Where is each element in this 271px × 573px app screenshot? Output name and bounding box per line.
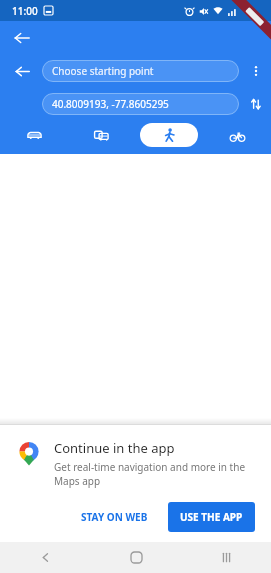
- staticText: STAY ON WEB: [81, 510, 148, 524]
- button[interactable]: Cycling: [215, 123, 259, 147]
- staticText: 40.8009193, -77.8605295: [52, 97, 169, 111]
- button[interactable]: Home: [91, 542, 181, 573]
- button[interactable]: USE THE APP: [168, 502, 255, 532]
- button[interactable]: 40.8009193, -77.8605295: [42, 93, 239, 115]
- button[interactable]: Walking: [140, 123, 198, 147]
- button[interactable]: More options: [243, 58, 269, 84]
- button[interactable]: Navigate up: [8, 57, 36, 85]
- staticText: Get real-time navigation and more in the…: [54, 460, 255, 488]
- button[interactable]: Recent apps: [181, 542, 271, 573]
- button[interactable]: Back: [0, 542, 91, 573]
- button[interactable]: Driving: [12, 123, 56, 147]
- button[interactable]: Transit: [79, 123, 123, 147]
- button[interactable]: STAY ON WEB: [71, 503, 158, 531]
- button[interactable]: Swap start and destination: [243, 91, 269, 117]
- staticText: 11:00: [12, 4, 38, 18]
- staticText: Choose starting point: [52, 64, 154, 78]
- staticText: USE THE APP: [180, 510, 243, 524]
- button[interactable]: Choose starting point: [42, 60, 239, 82]
- button[interactable]: Back: [8, 24, 36, 52]
- staticText: Continue in the app: [54, 439, 175, 457]
